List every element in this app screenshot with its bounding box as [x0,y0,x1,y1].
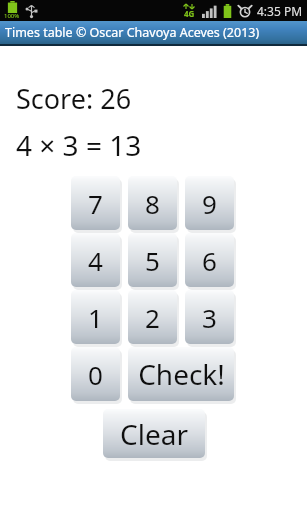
button[interactable]: 8 [128,176,177,230]
staticText: 4 [88,243,103,278]
button[interactable]: Check! [128,347,234,401]
button[interactable]: 4 [71,233,120,287]
staticText: Score: 26 [16,80,132,117]
staticText: 1 [88,300,103,335]
staticText: 5 [145,243,160,278]
button[interactable]: 6 [185,233,234,287]
staticText: 8 [145,186,160,221]
staticText: 7 [88,186,103,221]
staticText: Clear [120,415,188,453]
staticText: 0 [88,357,103,392]
staticText: 2 [145,300,160,335]
staticText: 9 [202,186,217,221]
button[interactable]: Clear [103,409,205,458]
staticText: 100% [4,12,20,20]
staticText: 3 [202,300,217,335]
button[interactable]: 7 [71,176,120,230]
button[interactable]: 1 [71,290,120,344]
staticText: 6 [202,243,217,278]
staticText: Check! [138,355,225,393]
button[interactable]: 9 [185,176,234,230]
button[interactable]: 5 [128,233,177,287]
staticText: Times table © Oscar Chavoya Aceves (2013… [5,24,260,41]
staticText: 4G [184,8,195,19]
staticText: 4:35 PM [257,3,303,19]
staticText: 4 × 3 = 13 [16,126,142,164]
button[interactable]: 2 [128,290,177,344]
button[interactable]: 0 [71,347,120,401]
button[interactable]: 3 [185,290,234,344]
